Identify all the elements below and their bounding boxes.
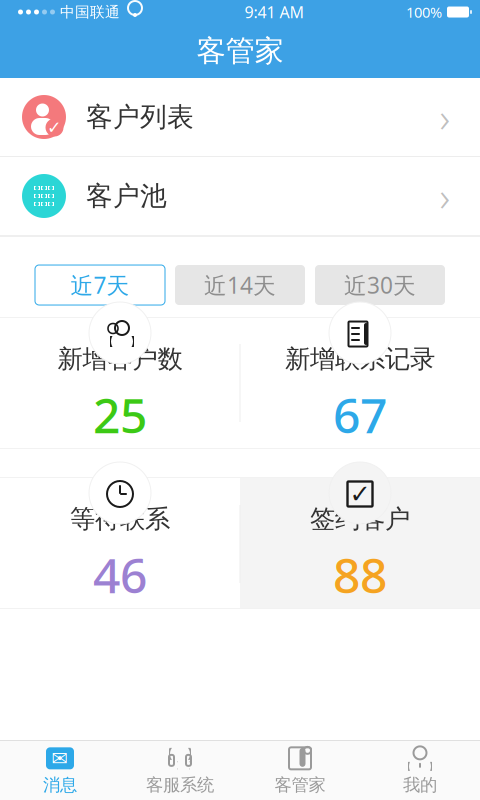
staticText: 46 <box>93 543 147 606</box>
staticText: 消息 <box>43 774 77 796</box>
button[interactable]: 等待联系 <box>0 478 240 608</box>
staticText: 客服系统 <box>146 774 214 796</box>
staticText: 客管家 <box>274 774 325 796</box>
staticText: 等待联系 <box>70 504 170 535</box>
button[interactable]: 客户池 <box>0 157 480 235</box>
staticText: 新增联系记录 <box>285 344 435 375</box>
staticText: 近30天 <box>344 270 416 300</box>
button[interactable]: ✓ <box>0 78 480 156</box>
button[interactable]: 客服系统 <box>120 741 240 800</box>
button[interactable]: 新增客户数 <box>0 318 240 448</box>
button[interactable]: 我的 <box>360 741 480 800</box>
staticText: 客管家 <box>196 33 283 69</box>
button[interactable]: 近7天 <box>35 265 165 305</box>
staticText: 新增客户数 <box>57 344 182 375</box>
button[interactable]: 新增联系记录 <box>240 318 480 448</box>
button[interactable]: 客管家 <box>240 741 360 800</box>
button[interactable]: 近30天 <box>315 265 445 305</box>
staticText: ✓ <box>349 480 370 508</box>
staticText: 88 <box>333 543 387 606</box>
staticText: 客户列表 <box>86 101 194 133</box>
button[interactable]: 签约客户 <box>240 478 480 608</box>
staticText: ✓ <box>47 118 62 137</box>
staticText: 我的 <box>403 774 437 796</box>
staticText: 100% <box>406 2 442 22</box>
staticText: 近14天 <box>204 270 276 300</box>
staticText: 中国联通 <box>60 3 120 21</box>
button[interactable]: ✉ <box>0 741 120 800</box>
staticText: › <box>439 169 450 222</box>
button[interactable]: 近14天 <box>175 265 305 305</box>
staticText: › <box>439 90 450 143</box>
staticText: 客户池 <box>86 180 167 212</box>
staticText: 9:41 AM <box>244 1 304 23</box>
staticText: 近7天 <box>70 270 129 300</box>
staticText: 67 <box>333 383 387 446</box>
staticText: ✉ <box>51 747 68 770</box>
staticText: 签约客户 <box>310 504 410 535</box>
staticText: 25 <box>93 383 147 446</box>
